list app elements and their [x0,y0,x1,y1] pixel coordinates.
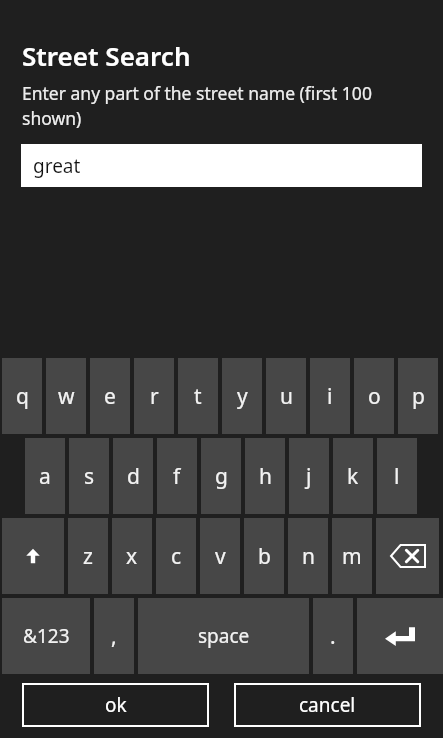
button[interactable]: Shift [2,518,64,594]
staticText: g [215,462,228,491]
button[interactable]: n [288,518,328,594]
button[interactable]: h [245,438,285,514]
button[interactable]: i [310,358,350,434]
staticText: u [280,382,293,411]
staticText: i [327,382,333,411]
button[interactable]: w [46,358,86,434]
staticText: n [302,542,315,571]
staticText: cancel [299,692,356,718]
staticText: o [368,382,381,411]
button[interactable]: r [134,358,174,434]
staticText: z [83,542,93,571]
button[interactable]: a [25,438,65,514]
button[interactable]: cancel [234,683,421,727]
button[interactable]: d [113,438,153,514]
staticText: f [173,462,181,491]
button[interactable]: g [201,438,241,514]
staticText: j [306,462,312,491]
staticText: y [237,382,248,411]
button[interactable]: x [112,518,152,594]
button[interactable]: o [354,358,394,434]
staticText: great [33,153,81,179]
button[interactable]: j [289,438,329,514]
staticText: l [394,462,400,491]
button[interactable]: e [90,358,130,434]
button[interactable]: &123 [2,598,90,674]
button[interactable]: p [398,358,438,434]
button[interactable]: u [266,358,306,434]
staticText: x [126,542,138,571]
button[interactable]: y [222,358,262,434]
staticText: q [16,382,29,411]
staticText: . [330,622,336,651]
button[interactable]: k [333,438,373,514]
staticText: b [258,542,271,571]
staticText: m [342,542,362,571]
staticText: v [215,542,226,571]
button[interactable]: m [332,518,372,594]
staticText: c [171,542,182,571]
staticText: w [58,382,75,411]
button[interactable]: ok [22,683,209,727]
staticText: r [150,382,159,411]
staticText: space [198,623,250,649]
staticText: &123 [23,623,70,649]
button[interactable]: s [69,438,109,514]
button[interactable]: z [68,518,108,594]
button[interactable]: v [200,518,240,594]
button[interactable]: . [313,598,353,674]
button[interactable]: Enter [357,598,443,674]
button[interactable]: space [138,598,309,674]
staticText: p [412,382,425,411]
button[interactable]: l [377,438,417,514]
button[interactable]: great [21,144,422,187]
button[interactable]: q [2,358,42,434]
staticText: d [127,462,140,491]
button[interactable]: Backspace [376,518,439,594]
staticText: k [347,462,359,491]
staticText: , [111,622,117,651]
staticText: s [84,462,95,491]
button[interactable]: , [94,598,134,674]
staticText: ok [105,692,127,718]
staticText: h [259,462,272,491]
staticText: Street Search [22,38,191,73]
staticText: Enter any part of the street name (first… [22,81,425,130]
staticText: a [39,462,51,491]
button[interactable]: c [156,518,196,594]
button[interactable]: t [178,358,218,434]
staticText: t [194,382,202,411]
button[interactable]: f [157,438,197,514]
staticText: e [104,382,116,411]
button[interactable]: b [244,518,284,594]
